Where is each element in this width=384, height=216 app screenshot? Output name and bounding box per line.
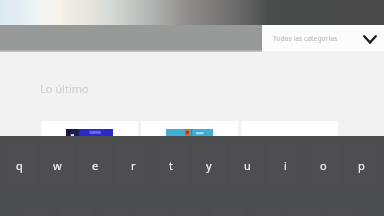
staticText: o bbox=[320, 158, 327, 173]
button[interactable]: q bbox=[2, 139, 36, 191]
staticText: u bbox=[244, 158, 251, 173]
button[interactable]: w bbox=[40, 139, 74, 191]
button[interactable]: t bbox=[154, 139, 188, 191]
staticText: i bbox=[284, 158, 287, 173]
button[interactable] bbox=[41, 121, 138, 161]
button[interactable]: Expandir categorías bbox=[358, 27, 382, 51]
staticText: t bbox=[169, 158, 173, 173]
button[interactable]: y bbox=[192, 139, 226, 191]
button[interactable]: u bbox=[230, 139, 264, 191]
staticText: p bbox=[358, 158, 365, 173]
button[interactable]: e bbox=[78, 139, 112, 191]
button[interactable] bbox=[241, 121, 338, 161]
button[interactable]: Todas las categorías bbox=[262, 25, 384, 51]
button[interactable]: r bbox=[116, 139, 150, 191]
staticText: q bbox=[16, 158, 23, 173]
button[interactable] bbox=[141, 121, 238, 161]
staticText: w bbox=[53, 158, 62, 173]
staticText: e bbox=[92, 158, 99, 173]
staticText: Lo último bbox=[40, 81, 89, 96]
button[interactable]: o bbox=[306, 139, 340, 191]
button[interactable]: i bbox=[268, 139, 302, 191]
button[interactable]: p bbox=[344, 139, 378, 191]
staticText: Todas las categorías bbox=[273, 34, 338, 43]
staticText: y bbox=[206, 158, 212, 173]
staticText: r bbox=[131, 158, 136, 173]
